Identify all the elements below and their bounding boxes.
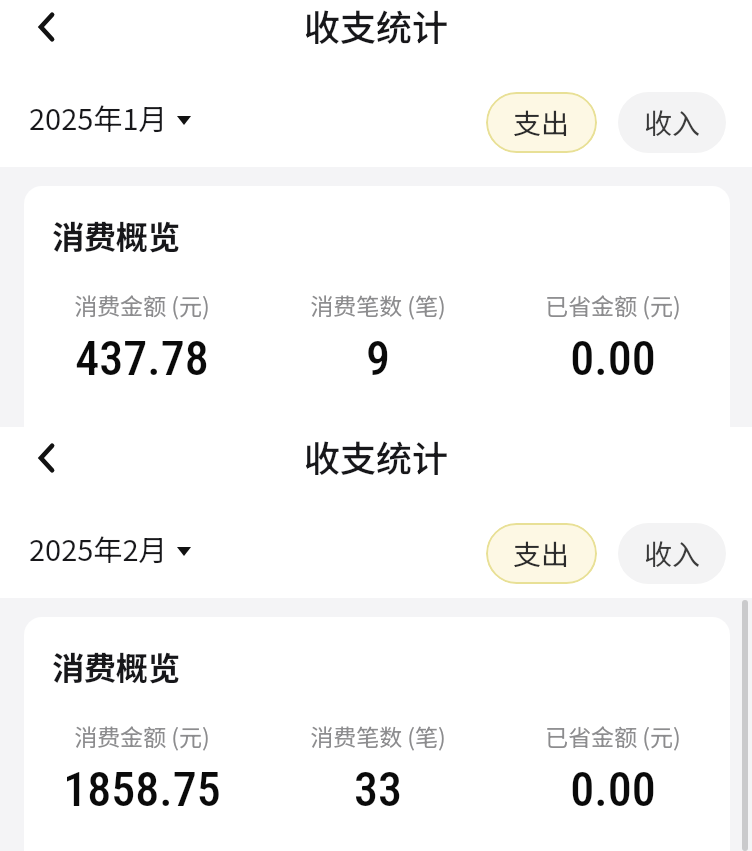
staticText: 已省金额 (元) <box>545 719 681 752</box>
button[interactable]: 支出 <box>486 92 597 153</box>
staticText: 支出 <box>513 533 570 574</box>
staticText: 消费概览 <box>52 643 181 689</box>
staticText: 消费概览 <box>52 212 181 258</box>
button[interactable]: 收入 <box>618 92 726 153</box>
staticText: 消费笔数 (笔) <box>310 719 446 752</box>
button[interactable]: 2025年2月 <box>29 527 191 569</box>
staticText: 33 <box>354 761 402 817</box>
staticText: 收入 <box>644 102 701 143</box>
staticText: 已省金额 (元) <box>545 288 681 321</box>
staticText: 消费金额 (元) <box>74 288 210 321</box>
staticText: 支出 <box>513 102 570 143</box>
staticText: 9 <box>366 330 390 386</box>
staticText: 437.78 <box>75 330 209 386</box>
button[interactable]: 支出 <box>486 523 597 584</box>
staticText: 1858.75 <box>63 761 221 817</box>
staticText: 消费金额 (元) <box>74 719 210 752</box>
staticText: 收入 <box>644 533 701 574</box>
button[interactable]: Back <box>20 2 70 52</box>
staticText: 收支统计 <box>304 0 449 51</box>
staticText: 2025年2月 <box>29 527 168 569</box>
staticText: 2025年1月 <box>29 96 168 138</box>
staticText: 0.00 <box>570 330 656 386</box>
staticText: 0.00 <box>570 761 656 817</box>
button[interactable]: 收入 <box>618 523 726 584</box>
button[interactable]: Back <box>20 433 70 483</box>
staticText: 收支统计 <box>304 430 449 482</box>
staticText: 消费笔数 (笔) <box>310 288 446 321</box>
button[interactable]: 2025年1月 <box>29 96 191 138</box>
